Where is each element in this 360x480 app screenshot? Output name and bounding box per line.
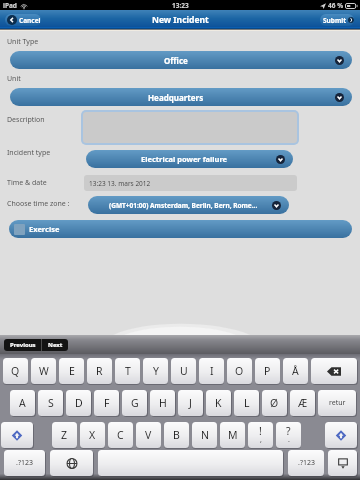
staticText: H	[159, 396, 167, 410]
staticText: X	[89, 428, 96, 442]
button[interactable]: Shift	[325, 422, 357, 448]
staticText: .	[288, 435, 290, 445]
button[interactable]: (GMT+01:00) Amsterdam, Berlin, Bern, Rom…	[88, 196, 289, 214]
button[interactable]: P	[255, 358, 280, 384]
staticText: B	[173, 428, 180, 442]
button[interactable]: Æ	[290, 390, 315, 416]
button[interactable]	[81, 110, 299, 145]
button[interactable]: C	[108, 422, 133, 448]
button[interactable]: Electrical power failure	[86, 150, 293, 168]
button[interactable]: I	[199, 358, 224, 384]
staticText: J	[189, 396, 192, 410]
staticText: M	[228, 428, 238, 442]
staticText: Cancel	[19, 16, 41, 25]
button[interactable]: M	[220, 422, 245, 448]
staticText: .?123	[16, 458, 33, 468]
button[interactable]: B	[164, 422, 189, 448]
button[interactable]: Y	[143, 358, 168, 384]
button[interactable]: X	[80, 422, 105, 448]
staticText: W	[39, 364, 49, 378]
staticText: Ø	[270, 396, 279, 410]
button[interactable]: retur	[318, 390, 356, 416]
button[interactable]: Cancel	[5, 14, 41, 26]
button[interactable]: Submit	[320, 14, 354, 26]
button[interactable]: K	[206, 390, 231, 416]
button[interactable]: Next	[42, 339, 68, 351]
staticText: iPad	[3, 1, 17, 10]
staticText: S	[48, 396, 54, 410]
staticText: Q	[11, 364, 20, 378]
staticText: 13:23	[172, 1, 189, 10]
staticText: C	[117, 428, 124, 442]
button[interactable]: .?123	[288, 450, 324, 476]
staticText: N	[201, 428, 209, 442]
staticText: ,	[260, 435, 262, 445]
button[interactable]: Exercise	[9, 220, 352, 238]
button[interactable]: L	[234, 390, 259, 416]
staticText: P	[264, 364, 271, 378]
staticText: (GMT+01:00) Amsterdam, Berlin, Bern, Rom…	[109, 201, 258, 210]
staticText: D	[75, 396, 83, 410]
button[interactable]: !	[248, 422, 273, 448]
button[interactable]: R	[87, 358, 112, 384]
button[interactable]: S	[38, 390, 63, 416]
button[interactable]: Backspace	[311, 358, 357, 384]
button[interactable]: Å	[283, 358, 308, 384]
button[interactable]: T	[115, 358, 140, 384]
button[interactable]: D	[66, 390, 91, 416]
staticText: I	[210, 364, 214, 378]
button[interactable]: G	[122, 390, 147, 416]
button[interactable]: E	[59, 358, 84, 384]
button[interactable]: Change keyboard	[50, 450, 93, 476]
staticText: F	[104, 396, 110, 410]
button[interactable]: .?123	[4, 450, 45, 476]
staticText: R	[96, 364, 103, 378]
staticText: Choose time zone :	[7, 199, 70, 209]
staticText: Previous	[10, 341, 36, 349]
button[interactable]: J	[178, 390, 203, 416]
button[interactable]: Previous	[4, 339, 41, 351]
staticText: Z	[61, 428, 68, 442]
button[interactable]: Z	[52, 422, 77, 448]
button[interactable]: Shift	[1, 422, 33, 448]
staticText: 46 %	[328, 1, 343, 10]
staticText: Incident type	[7, 148, 51, 158]
button[interactable]: A	[10, 390, 35, 416]
staticText: Electrical power failure	[141, 154, 228, 164]
staticText: U	[180, 364, 188, 378]
staticText: ?	[286, 424, 291, 438]
staticText: Time & date	[7, 178, 47, 188]
staticText: A	[19, 396, 26, 410]
staticText: .?123	[298, 458, 315, 468]
button[interactable]: N	[192, 422, 217, 448]
staticText: G	[131, 396, 139, 410]
button[interactable]: W	[31, 358, 56, 384]
button[interactable]: Ø	[262, 390, 287, 416]
staticText: Å	[292, 364, 299, 378]
button[interactable]: F	[94, 390, 119, 416]
staticText: T	[125, 364, 131, 378]
staticText: Submit	[323, 16, 347, 25]
button[interactable]: ?	[276, 422, 301, 448]
button[interactable]: Space	[98, 450, 283, 476]
staticText: 13:23 13. mars 2012	[89, 179, 151, 188]
staticText: Unit Type	[7, 37, 39, 47]
button[interactable]: V	[136, 422, 161, 448]
staticText: Exercise	[29, 224, 60, 234]
button[interactable]: O	[227, 358, 252, 384]
button[interactable]: Office	[10, 51, 352, 69]
staticText: Unit	[7, 74, 21, 84]
staticText: Description	[7, 115, 45, 125]
button[interactable]: Headquarters	[10, 88, 352, 106]
staticText: retur	[329, 398, 346, 408]
staticText: E	[69, 364, 75, 378]
staticText: L	[244, 396, 250, 410]
staticText: Headquarters	[148, 92, 204, 103]
button[interactable]: U	[171, 358, 196, 384]
staticText: Æ	[298, 396, 308, 410]
button[interactable]: Hide keyboard	[328, 450, 357, 476]
button[interactable]: Q	[3, 358, 28, 384]
staticText: Next	[48, 341, 63, 349]
staticText: New Incident	[152, 14, 209, 26]
button[interactable]: H	[150, 390, 175, 416]
